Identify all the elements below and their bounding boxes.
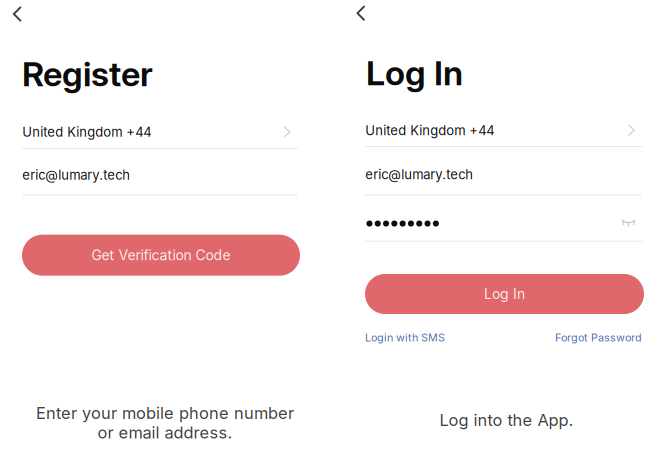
button[interactable]: Log In <box>365 274 644 314</box>
staticText: eric@lumary.tech <box>365 166 473 182</box>
staticText: Log In <box>484 285 525 302</box>
button[interactable]: eric@lumary.tech <box>365 166 642 195</box>
staticText: Forgot Password <box>555 331 642 344</box>
button[interactable]: Show password <box>616 216 642 238</box>
staticText: Login with SMS <box>365 331 445 344</box>
staticText: Log into the App. <box>439 410 573 430</box>
button[interactable]: Forgot Password <box>532 331 642 344</box>
button[interactable]: Back <box>0 0 36 30</box>
button[interactable]: United Kingdom +44 <box>365 118 642 154</box>
staticText: Register <box>22 53 153 94</box>
staticText: eric@lumary.tech <box>22 167 130 183</box>
button[interactable]: Get Verification Code <box>22 235 300 276</box>
button[interactable]: eric@lumary.tech <box>22 167 298 195</box>
button[interactable]: United Kingdom +44 <box>22 119 298 155</box>
button[interactable]: Back <box>342 0 378 30</box>
staticText: or email address. <box>97 422 232 442</box>
button[interactable]: Login with SMS <box>365 331 445 344</box>
staticText: Get Verification Code <box>91 247 230 264</box>
button[interactable]: Password <box>365 216 612 241</box>
staticText: Log In <box>366 52 463 93</box>
staticText: Enter your mobile phone number <box>36 403 294 423</box>
staticText: United Kingdom +44 <box>365 122 494 138</box>
staticText: United Kingdom +44 <box>22 124 151 140</box>
